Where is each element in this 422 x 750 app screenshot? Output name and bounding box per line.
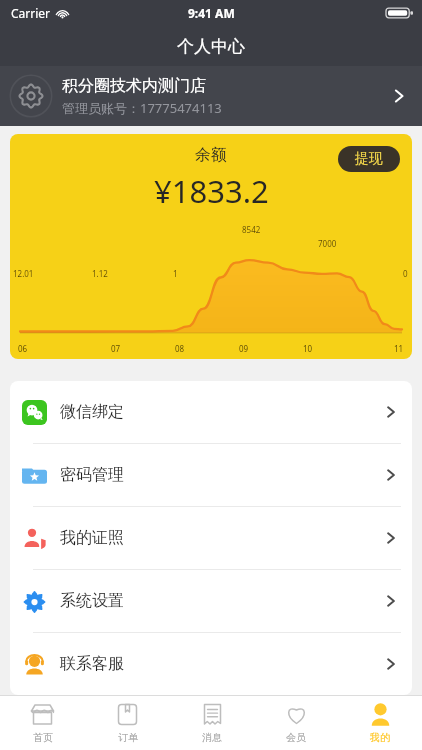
staticText: 12.01 — [13, 268, 34, 279]
staticText: 07 — [111, 343, 121, 354]
staticText: 提现 — [355, 150, 383, 168]
staticText: ¥1833.2 — [154, 170, 269, 212]
button[interactable]: 会员 — [254, 696, 338, 750]
staticText: 1 — [173, 268, 178, 279]
staticText: 首页 — [33, 731, 53, 744]
staticText: 06 — [18, 343, 28, 354]
button[interactable]: 消息 — [170, 696, 254, 750]
staticText: 订单 — [118, 731, 138, 744]
staticText: 管理员账号：17775474113 — [62, 99, 222, 117]
button[interactable]: 订单 — [85, 696, 170, 750]
staticText: 密码管理 — [60, 465, 382, 485]
staticText: 08 — [175, 343, 185, 354]
button[interactable]: 系统设置 — [10, 570, 412, 632]
staticText: 8542 — [242, 224, 261, 235]
button[interactable]: 积分圈技术内测门店 — [0, 66, 422, 126]
staticText: 联系客服 — [60, 654, 382, 674]
staticText: 9:41 AM — [188, 5, 235, 21]
staticText: Carrier — [11, 5, 51, 21]
staticText: 会员 — [286, 731, 306, 744]
staticText: 消息 — [202, 731, 222, 744]
button[interactable]: 联系客服 — [10, 633, 412, 695]
staticText: 积分圈技术内测门店 — [62, 76, 206, 96]
staticText: 7000 — [318, 238, 337, 249]
staticText: 1.12 — [92, 268, 108, 279]
staticText: 我的 — [370, 731, 390, 744]
staticText: 余额 — [195, 145, 227, 165]
button[interactable]: 微信绑定 — [10, 381, 412, 443]
staticText: 09 — [239, 343, 249, 354]
button[interactable]: 我的证照 — [10, 507, 412, 569]
staticText: 微信绑定 — [60, 402, 382, 422]
button[interactable]: 提现 — [338, 146, 400, 172]
staticText: 11 — [394, 343, 404, 354]
staticText: 个人中心 — [177, 36, 245, 57]
button[interactable]: 首页 — [0, 696, 85, 750]
button[interactable]: 我的 — [338, 696, 422, 750]
button[interactable]: 密码管理 — [10, 444, 412, 506]
staticText: 0 — [403, 268, 408, 279]
other: Store details — [388, 85, 410, 107]
staticText: 我的证照 — [60, 528, 382, 548]
staticText: 系统设置 — [60, 591, 382, 611]
staticText: 10 — [303, 343, 313, 354]
